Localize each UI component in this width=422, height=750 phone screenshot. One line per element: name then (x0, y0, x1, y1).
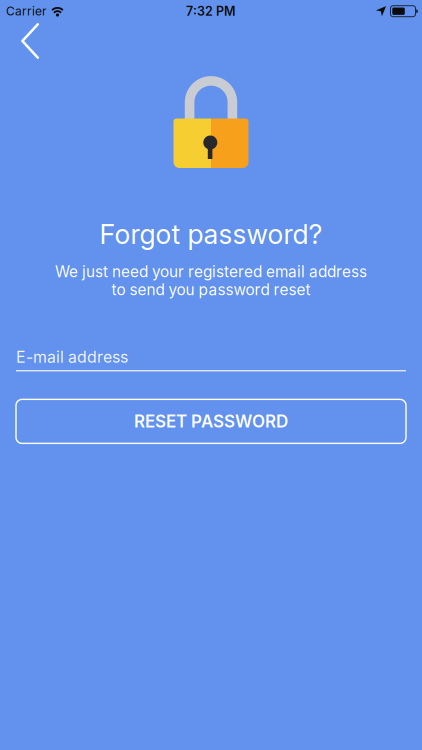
staticText: E-mail address (16, 347, 128, 367)
staticText: to send you password reset (111, 280, 310, 299)
button[interactable]: E-mail address (16, 347, 406, 371)
staticText: Forgot password? (99, 218, 322, 251)
button[interactable]: Back (0, 20, 51, 58)
staticText: RESET PASSWORD (134, 411, 288, 432)
staticText: Carrier (6, 4, 47, 18)
staticText: 7:32 PM (186, 4, 236, 19)
staticText: We just need your registered email addre… (55, 262, 367, 281)
button[interactable]: RESET PASSWORD (16, 399, 406, 443)
